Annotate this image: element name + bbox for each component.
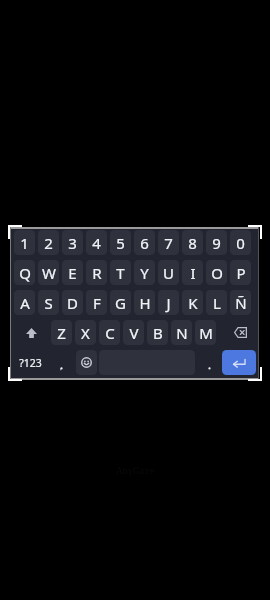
button[interactable]: F	[86, 290, 107, 315]
button[interactable]: L	[206, 290, 227, 315]
button[interactable]: I	[182, 260, 203, 285]
staticText: U	[163, 263, 174, 283]
staticText: J	[166, 293, 171, 313]
staticText: B	[153, 323, 163, 343]
staticText: Ñ	[235, 293, 247, 313]
button[interactable]: Q	[14, 260, 35, 285]
button[interactable]: 9	[206, 230, 227, 255]
button[interactable]: Emoji	[76, 350, 97, 375]
staticText: C	[105, 323, 115, 343]
button[interactable]: G	[110, 290, 131, 315]
button[interactable]: Z	[51, 320, 72, 345]
staticText: O	[211, 263, 223, 283]
staticText: 2	[44, 233, 53, 253]
button[interactable]: J	[158, 290, 179, 315]
button[interactable]: P	[230, 260, 251, 285]
button[interactable]: Enter	[222, 350, 256, 375]
staticText: E	[68, 263, 77, 283]
staticText: 6	[140, 233, 149, 253]
button[interactable]: H	[134, 290, 155, 315]
staticText: A	[20, 293, 30, 313]
button[interactable]: 4	[86, 230, 107, 255]
button[interactable]: W	[38, 260, 59, 285]
button[interactable]: 6	[134, 230, 155, 255]
staticText: K	[188, 293, 198, 313]
staticText: S	[44, 293, 53, 313]
staticText: T	[116, 263, 125, 283]
staticText: 3	[68, 233, 77, 253]
button[interactable]: B	[147, 320, 168, 345]
button[interactable]: Shift	[14, 320, 48, 345]
staticText: Y	[140, 263, 149, 283]
staticText: Z	[57, 323, 66, 343]
button[interactable]: N	[171, 320, 192, 345]
staticText: D	[67, 293, 78, 313]
button[interactable]: T	[110, 260, 131, 285]
button[interactable]: 7	[158, 230, 179, 255]
staticText: R	[92, 263, 102, 283]
staticText: 8	[188, 233, 197, 253]
button[interactable]: R	[86, 260, 107, 285]
staticText: V	[129, 323, 139, 343]
button[interactable]: Backspace	[224, 320, 257, 345]
button[interactable]: O	[206, 260, 227, 285]
staticText: X	[81, 323, 90, 343]
staticText: 1	[20, 233, 29, 253]
button[interactable]: 3	[62, 230, 83, 255]
button[interactable]: E	[62, 260, 83, 285]
button[interactable]: D	[62, 290, 83, 315]
staticText: M	[199, 323, 213, 343]
staticText: 9	[212, 233, 221, 253]
staticText: G	[115, 293, 126, 313]
button[interactable]: 5	[110, 230, 131, 255]
staticText: I	[190, 263, 196, 283]
staticText: P	[236, 263, 246, 283]
button[interactable]: 1	[14, 230, 35, 255]
staticText: ?123	[19, 356, 42, 370]
button[interactable]: 2	[38, 230, 59, 255]
staticText: H	[139, 293, 151, 313]
button[interactable]: Period	[199, 350, 219, 375]
button[interactable]: A	[14, 290, 35, 315]
button[interactable]: X	[75, 320, 96, 345]
button[interactable]: U	[158, 260, 179, 285]
staticText: 4	[92, 233, 101, 253]
staticText: Q	[19, 263, 31, 283]
button[interactable]: ?123	[14, 350, 47, 375]
button[interactable]: 8	[182, 230, 203, 255]
button[interactable]: Comma	[50, 350, 72, 375]
button[interactable]: Y	[134, 260, 155, 285]
staticText: F	[93, 293, 101, 313]
staticText: 7	[164, 233, 173, 253]
button[interactable]: Ñ	[230, 290, 251, 315]
staticText: W	[42, 263, 56, 283]
button[interactable]: 0	[230, 230, 251, 255]
button[interactable]: S	[38, 290, 59, 315]
button[interactable]: K	[182, 290, 203, 315]
staticText: N	[176, 323, 188, 343]
button[interactable]: C	[99, 320, 120, 345]
staticText: L	[213, 293, 221, 313]
staticText: 5	[116, 233, 125, 253]
button[interactable]: V	[123, 320, 144, 345]
button[interactable]: M	[195, 320, 216, 345]
staticText: 0	[236, 233, 245, 253]
